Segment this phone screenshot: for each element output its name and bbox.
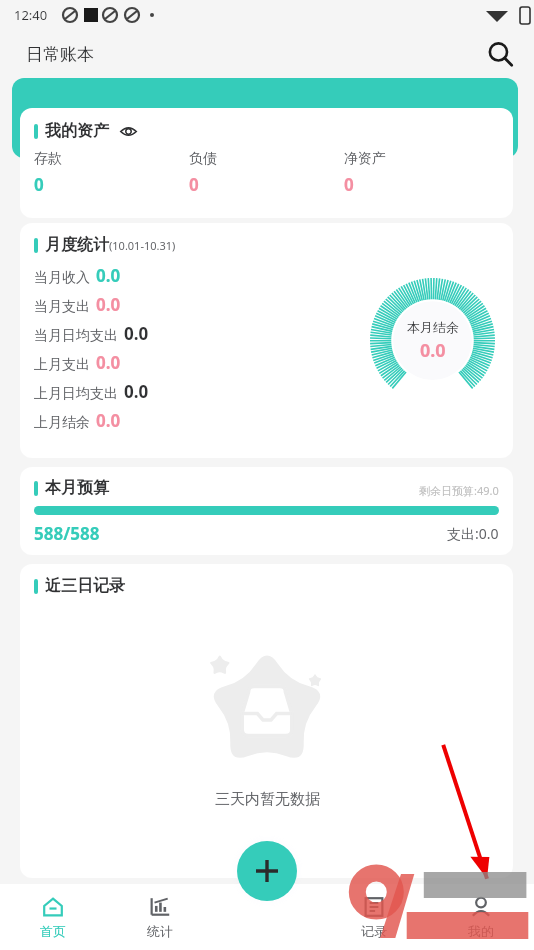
staticText: 净资产 [344, 150, 386, 168]
staticText: 0.0 [96, 293, 121, 316]
staticText: 0.0 [420, 338, 446, 363]
button[interactable]: 统计 [106, 884, 213, 950]
staticText: 三天内暂无数据 [215, 790, 320, 809]
staticText: 月度统计 [45, 235, 109, 255]
button[interactable]: 我的资产 [20, 108, 513, 218]
button[interactable]: 月度统计 [20, 223, 513, 458]
staticText: 0.0 [124, 380, 149, 403]
staticText: 存款 [34, 150, 62, 168]
button[interactable]: 我的 [427, 884, 534, 950]
button[interactable]: Search [480, 34, 520, 74]
staticText: 上月支出 [34, 356, 90, 374]
button[interactable]: Toggle visibility [118, 121, 138, 141]
staticText: 0.0 [96, 351, 121, 374]
staticText: 0.0 [96, 264, 121, 287]
staticText: (10.01-10.31) [109, 238, 176, 253]
button[interactable]: Add record [237, 841, 297, 901]
staticText: 负债 [189, 150, 217, 168]
staticText: 首页 [40, 923, 66, 939]
staticText: 0 [344, 173, 354, 196]
staticText: 0.0 [96, 409, 121, 432]
staticText: 剩余日预算:49.0 [419, 483, 499, 498]
staticText: 上月日均支出 [34, 385, 118, 403]
staticText: 当月支出 [34, 298, 90, 316]
staticText: 当月收入 [34, 269, 90, 287]
staticText: 我的 [468, 923, 494, 939]
staticText: 上月结余 [34, 414, 90, 432]
staticText: 588/588 [34, 522, 100, 544]
staticText: 0 [189, 173, 199, 196]
staticText: 0 [34, 173, 44, 196]
button[interactable]: 近三日记录 [20, 564, 513, 878]
staticText: 我的资产 [45, 121, 109, 141]
button[interactable]: 记录 [320, 884, 427, 950]
staticText: 12:40 [14, 6, 48, 24]
staticText: 记录 [361, 923, 387, 939]
staticText: 当月日均支出 [34, 327, 118, 345]
staticText: 本月预算 [45, 478, 109, 498]
staticText: 支出:0.0 [447, 524, 499, 543]
staticText: 近三日记录 [45, 576, 125, 596]
staticText: 0.0 [124, 322, 149, 345]
staticText: 日常账本 [26, 44, 94, 65]
button[interactable]: 本月预算 [20, 467, 513, 555]
staticText: 统计 [147, 923, 173, 939]
button[interactable]: 首页 [0, 884, 106, 950]
staticText: 本月结余 [407, 319, 459, 335]
